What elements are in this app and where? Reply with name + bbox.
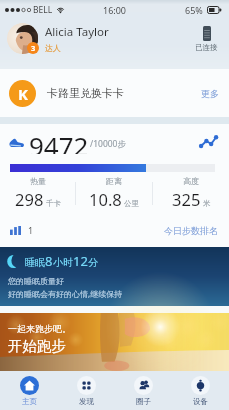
staticText: Alicia Taylor [45,24,109,40]
button[interactable]: 主页 [0,371,58,410]
staticText: 今日步数排名 [164,225,218,236]
staticText: 米 [203,199,211,208]
staticText: 设备 [193,397,208,406]
staticText: K [18,84,28,104]
staticText: 298 [15,188,44,210]
staticText: 9472 [29,128,89,154]
staticText: 公里 [124,199,139,208]
staticText: /10000步 [90,138,126,150]
button[interactable]: 热量 [0,176,75,210]
staticText: 12 [73,252,88,270]
staticText: BELL [33,4,53,16]
staticText: 您的睡眠质量好 [8,276,64,286]
staticText: 热量 [30,176,46,186]
staticText: 开始跑步 [8,337,66,355]
staticText: 1 [28,224,34,236]
staticText: 卡路里兑换卡卡 [47,86,124,100]
staticText: 千卡 [46,199,61,208]
staticText: 已连接 [195,43,218,52]
staticText: 睡眠 [25,256,45,269]
button[interactable]: 发现 [58,371,115,410]
staticText: 圈子 [136,397,151,406]
staticText: 8 [45,252,53,270]
staticText: 达人 [45,43,61,53]
staticText: 10.8 [89,188,122,210]
button[interactable]: Trend chart [199,134,218,149]
button[interactable]: 高度 [153,176,229,210]
button[interactable]: 设备 [172,371,229,410]
staticText: 主页 [22,397,37,406]
button[interactable]: 1 [0,218,229,242]
button[interactable]: 圈子 [115,371,172,410]
staticText: 发现 [79,397,94,406]
staticText: 小时 [53,256,73,269]
staticText: 更多 [201,88,219,99]
button[interactable]: 睡眠 [0,247,229,306]
staticText: 一起来跑步吧。 [8,323,71,334]
button[interactable]: 距离 [76,176,152,210]
button[interactable]: 一起来跑步吧。 [0,306,229,371]
staticText: 好的睡眠会有好的心情,继续保持 [8,288,123,299]
button[interactable]: K [0,69,229,117]
staticText: 3 [31,43,36,53]
staticText: 分 [88,256,98,269]
staticText: 16:00 [103,4,127,16]
staticText: 325 [172,188,201,210]
staticText: 距离 [106,176,122,186]
button[interactable]: Device connected [192,24,221,54]
staticText: 高度 [183,176,199,186]
staticText: 65% [185,4,203,16]
